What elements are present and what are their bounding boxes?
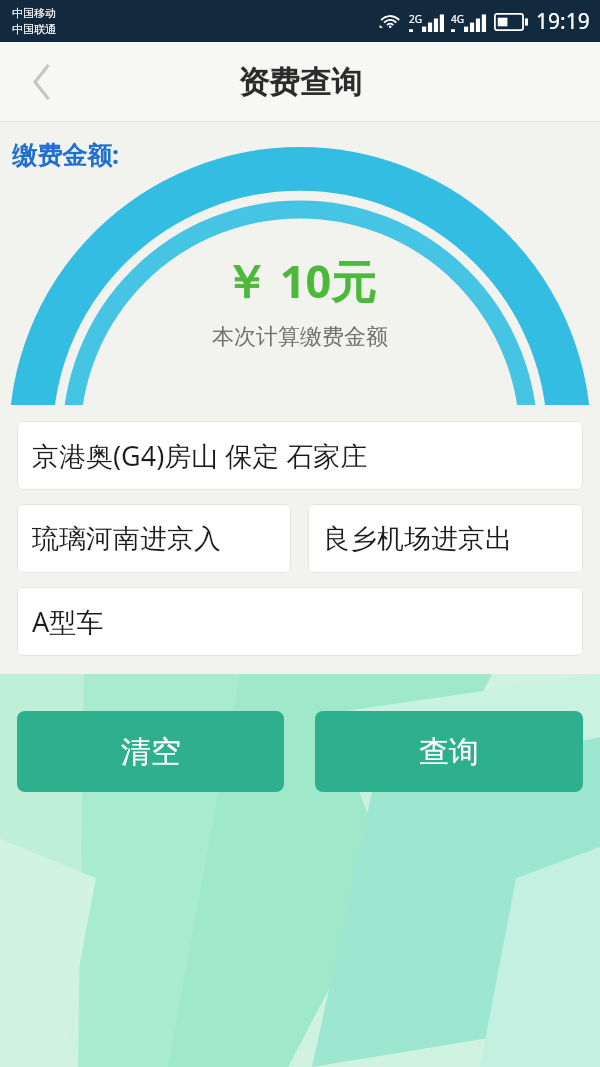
button[interactable]: A型车 [17, 587, 583, 656]
staticText: 本次计算缴费金额 [212, 323, 388, 351]
button[interactable]: 良乡机场进京出 [308, 504, 583, 573]
staticText: ￥ 10元 [223, 250, 377, 311]
button[interactable]: 京港奥(G4)房山 保定 石家庄 [17, 421, 583, 490]
staticText: 中国联通 [12, 22, 56, 36]
staticText: 京港奥(G4)房山 保定 石家庄 [32, 437, 368, 474]
staticText: 19:19 [536, 7, 590, 36]
staticText: 缴费金额: [12, 137, 120, 171]
button[interactable]: 清空 [17, 711, 284, 792]
staticText: 中国移动 [12, 6, 56, 20]
staticText: 查询 [419, 733, 479, 771]
staticText: 2G [409, 12, 422, 26]
staticText: A型车 [32, 603, 104, 640]
staticText: 清空 [121, 733, 181, 771]
button[interactable]: Back [0, 42, 86, 122]
staticText: 4G [451, 12, 464, 26]
button[interactable]: 查询 [315, 711, 583, 792]
button[interactable]: 琉璃河南进京入 [17, 504, 291, 573]
staticText: 琉璃河南进京入 [32, 522, 221, 556]
staticText: 良乡机场进京出 [323, 522, 512, 556]
staticText: 资费查询 [238, 63, 362, 102]
